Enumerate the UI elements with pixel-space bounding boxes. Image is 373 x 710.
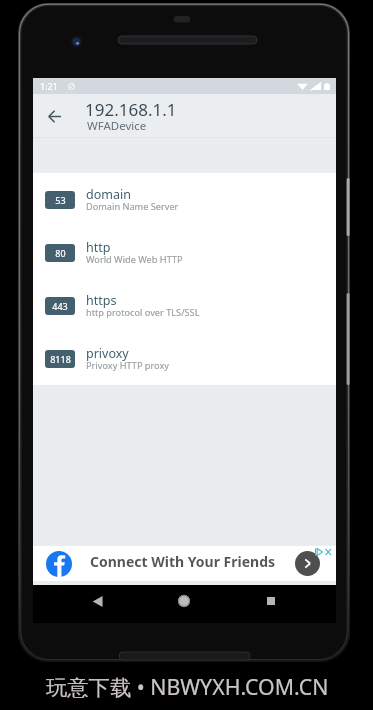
staticText: Domain Name Server bbox=[86, 200, 179, 213]
staticText: 192.168.1.1 bbox=[85, 98, 177, 121]
button[interactable]: Connect With Your Friends bbox=[33, 546, 336, 581]
button[interactable]: 53 bbox=[33, 173, 336, 226]
staticText: WFADevice bbox=[87, 118, 147, 134]
button[interactable]: Home bbox=[169, 586, 199, 616]
staticText: http protocol over TLS/SSL bbox=[86, 306, 200, 319]
staticText: 玩意下载 • NBWYXH.COM.CN bbox=[46, 672, 329, 701]
staticText: 80 bbox=[55, 247, 66, 259]
staticText: 443 bbox=[52, 300, 68, 312]
staticText: Connect With Your Friends bbox=[90, 552, 276, 571]
button[interactable]: 80 bbox=[33, 226, 336, 279]
staticText: World Wide Web HTTP bbox=[86, 253, 183, 266]
button[interactable]: 443 bbox=[33, 279, 336, 332]
staticText: domain bbox=[86, 186, 131, 203]
staticText: http bbox=[86, 239, 111, 256]
staticText: Privoxy HTTP proxy bbox=[86, 359, 170, 372]
staticText: 53 bbox=[55, 194, 66, 206]
staticText: privoxy bbox=[86, 345, 129, 362]
staticText: 1:21 bbox=[40, 80, 58, 92]
button[interactable]: Navigate up bbox=[33, 94, 76, 138]
button[interactable]: Recent apps bbox=[256, 586, 286, 616]
staticText: https bbox=[86, 292, 117, 309]
staticText: 8118 bbox=[50, 353, 71, 365]
button[interactable]: 8118 bbox=[33, 332, 336, 385]
button[interactable]: Back bbox=[82, 586, 112, 616]
